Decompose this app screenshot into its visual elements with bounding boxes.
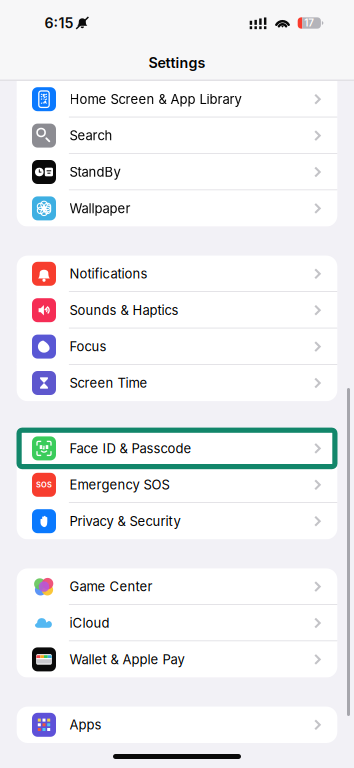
staticText: Search [70,128,113,143]
staticText: iCloud [70,615,110,631]
staticText: 17 [304,17,314,29]
staticText: Screen Time [70,375,148,391]
button[interactable]: SOS [17,467,337,503]
staticText: Apps [70,717,102,733]
button[interactable]: iCloud [17,605,337,641]
staticText: Settings [148,54,205,71]
button[interactable]: Wallpaper [17,190,337,227]
staticText: Home Screen & App Library [70,91,242,107]
staticText: Sounds & Haptics [70,302,179,318]
button[interactable]: Game Center [17,568,337,605]
button[interactable]: Search [17,117,337,154]
staticText: Game Center [70,579,153,594]
button[interactable]: Face ID & Passcode [17,430,337,467]
staticText: Face ID & Passcode [70,440,192,456]
staticText: Wallet & Apple Pay [70,651,185,667]
staticText: Focus [70,339,107,354]
button[interactable]: Screen Time [17,365,337,401]
staticText: SOS [36,480,52,489]
staticText: StandBy [70,164,121,180]
staticText: Privacy & Security [70,513,181,529]
button[interactable]: Apps [17,707,337,743]
button[interactable]: Home Screen & App Library [17,81,337,117]
button[interactable]: Privacy & Security [17,503,337,539]
staticText: 6:15 [44,14,73,31]
button[interactable]: StandBy [17,154,337,190]
staticText: Emergency SOS [70,477,170,493]
button[interactable]: Notifications [17,256,337,292]
button[interactable]: Wallet & Apple Pay [17,641,337,678]
button[interactable]: Sounds & Haptics [17,292,337,328]
button[interactable]: Focus [17,328,337,365]
staticText: Notifications [70,266,148,282]
staticText: Wallpaper [70,200,131,216]
